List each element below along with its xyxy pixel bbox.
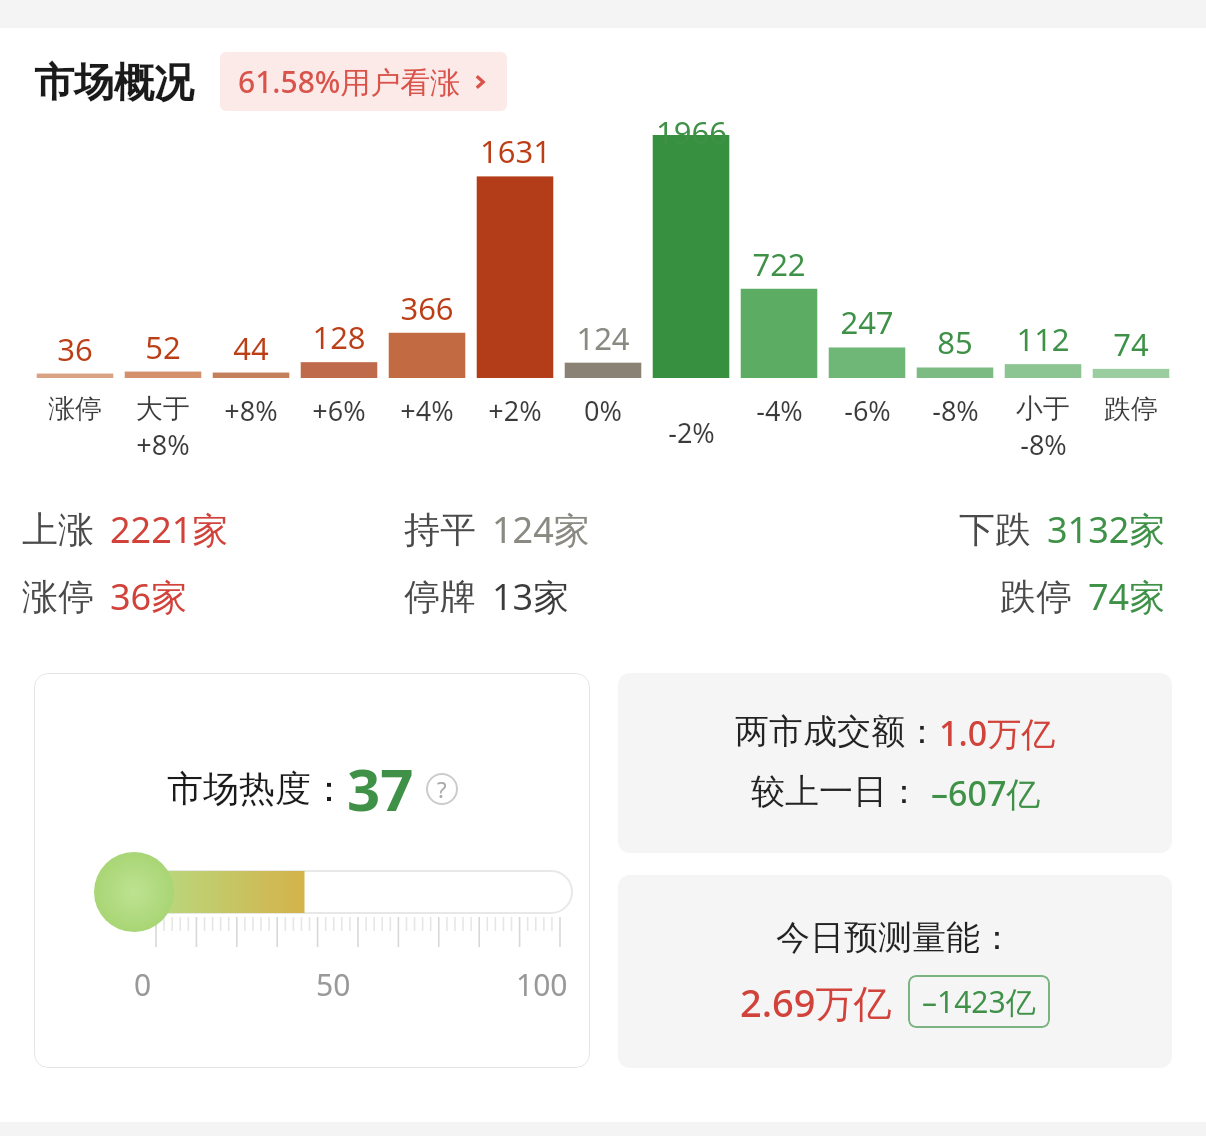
staticText: -2% [668, 414, 715, 451]
staticText: 上涨 [22, 507, 94, 552]
staticText: 今日预测量能： [776, 916, 1014, 959]
staticText: 36家 [110, 572, 188, 621]
button[interactable]: 今日预测量能： [618, 875, 1172, 1068]
staticText: 100 [516, 964, 568, 1005]
staticText: 1.0万亿 [939, 710, 1056, 756]
button[interactable]: Help [426, 773, 458, 805]
button[interactable]: 市场热度： [34, 673, 590, 1068]
staticText: +4% [400, 392, 454, 429]
button[interactable]: 两市成交额： [618, 673, 1172, 853]
staticText: 2221家 [110, 505, 229, 554]
staticText: 0 [134, 964, 152, 1005]
staticText: 36 [57, 328, 93, 370]
staticText: 74 [1113, 323, 1149, 365]
staticText: 247 [840, 301, 894, 343]
staticText: 1631 [480, 130, 551, 172]
staticText: 37 [347, 749, 414, 828]
staticText: –1423亿 [922, 981, 1036, 1022]
staticText: 128 [312, 316, 366, 358]
staticText: +8% [136, 426, 190, 463]
staticText: 市场热度： [167, 766, 347, 811]
staticText: 0% [584, 392, 622, 429]
staticText: 722 [752, 243, 806, 285]
staticText: 112 [1016, 318, 1070, 360]
staticText: ? [437, 774, 447, 804]
staticText: 44 [233, 327, 269, 369]
staticText: –607亿 [931, 770, 1041, 816]
staticText: 两市成交额： [735, 710, 939, 753]
staticText: 2.69万亿 [740, 976, 892, 1028]
staticText: 85 [937, 321, 973, 363]
staticText: 61.58%用户看涨 [238, 61, 461, 102]
staticText: 较上一日： [751, 770, 921, 813]
staticText: 124 [576, 317, 630, 359]
staticText: 1966 [656, 111, 727, 153]
staticText: 13家 [492, 572, 570, 621]
staticText: 停牌 [404, 574, 476, 619]
staticText: +6% [312, 392, 366, 429]
staticText: 涨停 [48, 392, 102, 426]
staticText: 持平 [404, 507, 476, 552]
staticText: -6% [844, 392, 891, 429]
staticText: -8% [932, 392, 979, 429]
staticText: 366 [400, 287, 454, 329]
staticText: 3132家 [1047, 505, 1166, 554]
staticText: +2% [488, 392, 542, 429]
staticText: 涨停 [22, 574, 94, 619]
staticText: 下跌 [959, 507, 1031, 552]
staticText: 52 [145, 326, 181, 368]
staticText: 跌停 [1000, 574, 1072, 619]
staticText: 124家 [492, 505, 590, 554]
staticText: 大于 [136, 392, 190, 426]
staticText: -8% [1020, 426, 1067, 463]
staticText: 市场概况 [34, 57, 194, 107]
staticText: 74家 [1088, 572, 1166, 621]
staticText: -4% [756, 392, 803, 429]
button[interactable]: 61.58%用户看涨 [220, 52, 507, 111]
staticText: 小于 [1016, 392, 1070, 426]
staticText: +8% [224, 392, 278, 429]
staticText: 跌停 [1104, 392, 1158, 426]
staticText: 50 [316, 964, 351, 1005]
